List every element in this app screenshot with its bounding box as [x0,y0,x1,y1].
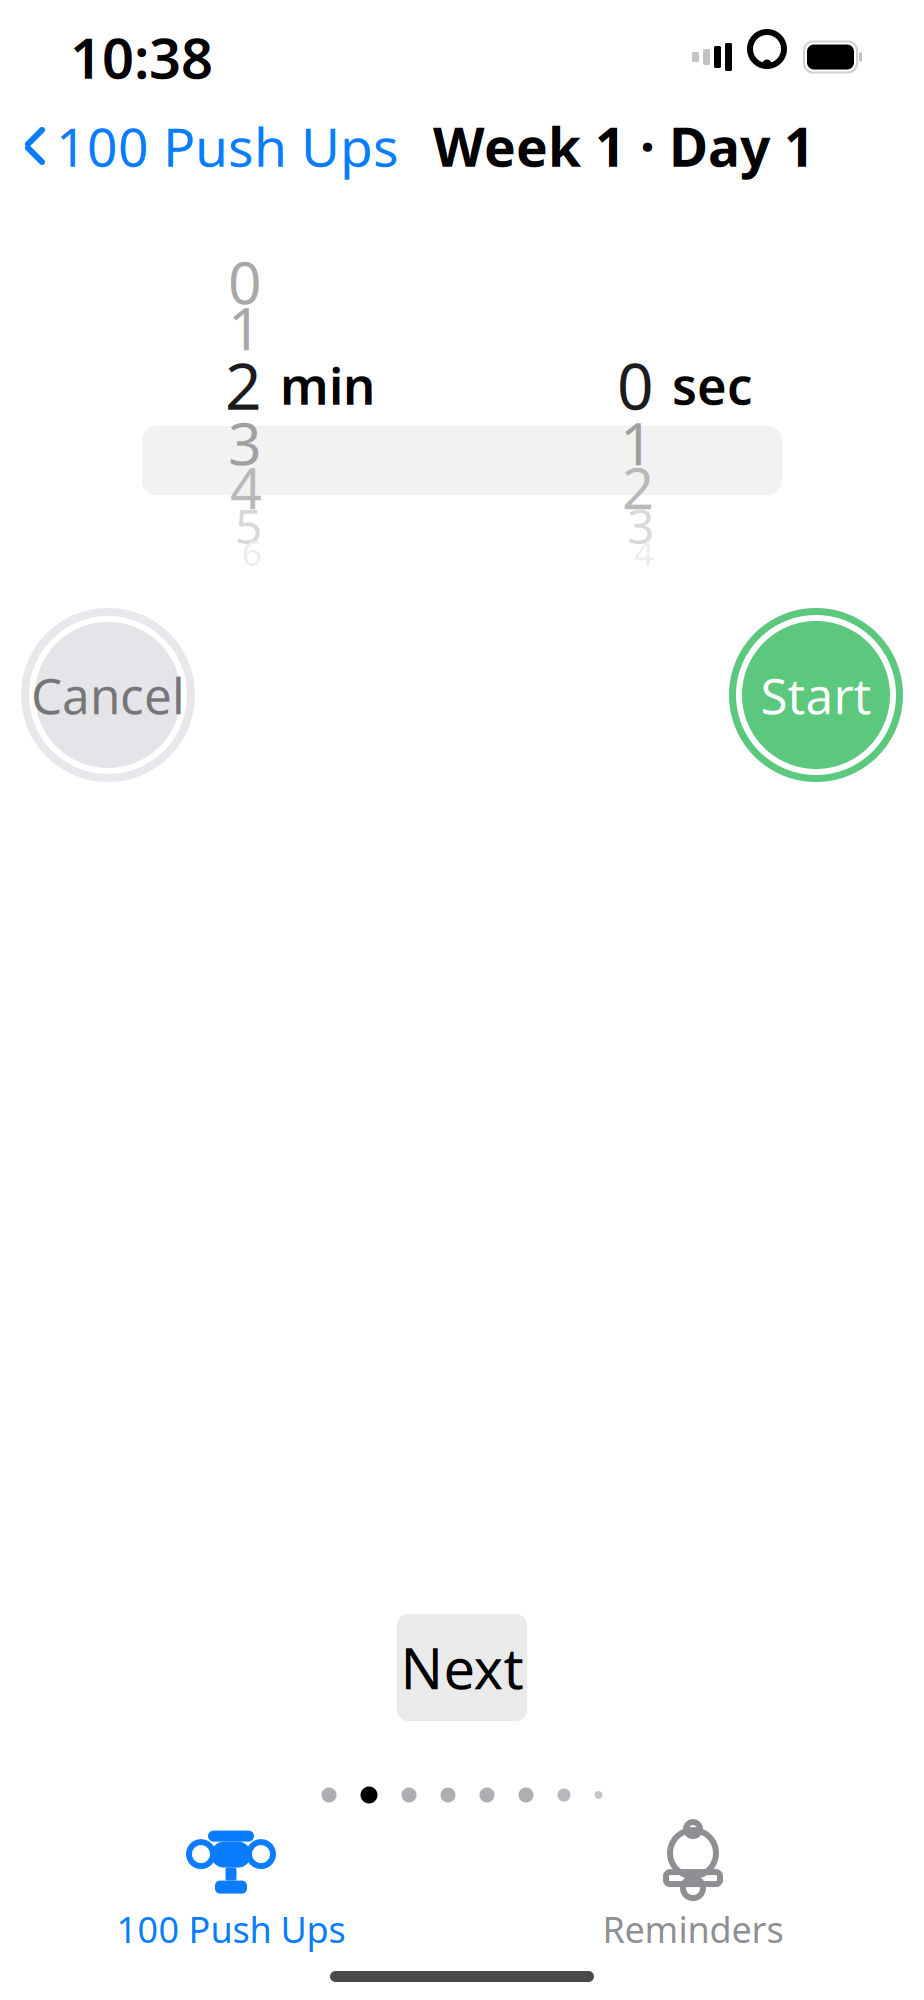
staticText: 100 Push Ups [116,1905,345,1953]
staticText: 5 [235,494,262,557]
staticText: 4 [230,450,262,525]
staticText: Week 1 · Day 1 [433,111,815,181]
button[interactable]: Cancel [21,608,195,782]
staticText: 2 [225,342,262,427]
staticText: 2 [622,450,654,525]
staticText: 10:38 [70,20,213,94]
staticText: 1 [620,403,654,481]
staticText: 100 Push Ups [56,111,399,181]
staticText: Start [760,662,871,728]
staticText: min [280,351,375,419]
staticText: 4 [634,529,654,575]
button[interactable]: 100 Push Ups [0,1839,462,1943]
staticText: 0 [228,242,262,320]
staticText: 0 [617,342,654,427]
button[interactable]: 100 Push Ups [0,101,399,191]
staticText: 3 [228,403,262,481]
staticText: Reminders [602,1905,783,1953]
staticText: Cancel [31,662,185,728]
button[interactable]: Next [397,1614,527,1721]
staticText: sec [672,351,752,419]
staticText: 1 [228,288,262,366]
staticText: Next [400,1630,523,1705]
staticText: 6 [242,529,262,575]
button[interactable]: Start [729,608,903,782]
button[interactable]: Reminders [462,1839,924,1943]
staticText: 3 [627,494,654,557]
